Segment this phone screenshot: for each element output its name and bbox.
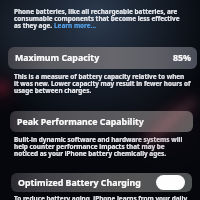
button[interactable]: Optimized Battery Charging — [11, 173, 192, 192]
staticText: as they age. — [14, 21, 54, 30]
staticText: usage between charges. — [14, 86, 92, 95]
staticText: 85% — [173, 52, 191, 64]
staticText: Maximum Capacity — [15, 52, 100, 64]
staticText: Peak Performance Capability — [17, 116, 144, 128]
button[interactable]: Peak Performance Capability — [10, 111, 193, 132]
staticText: consumable components that become less e… — [14, 14, 180, 23]
staticText: Phone batteries, like all rechargeable b… — [14, 7, 178, 16]
staticText: Built-in dynamic software and hardware s… — [14, 135, 183, 144]
staticText: This is a measure of battery capacity re… — [14, 72, 185, 81]
staticText: help counter performance impacts that ma… — [14, 142, 165, 151]
staticText: Learn more... — [54, 21, 97, 30]
button[interactable]: Optimized Battery Charging toggle — [156, 175, 185, 190]
staticText: it was new. Lower capacity may result in… — [14, 79, 191, 88]
staticText: noticed as your iPhone battery chemicall… — [14, 149, 167, 158]
staticText: To reduce battery aging, iPhone learns f… — [14, 194, 188, 200]
button[interactable]: Maximum Capacity — [8, 47, 197, 69]
staticText: Optimized Battery Charging — [18, 177, 141, 189]
button[interactable]: Learn more... — [54, 21, 97, 30]
